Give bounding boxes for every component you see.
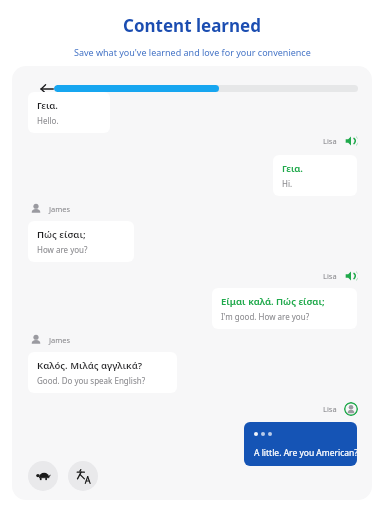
button[interactable]: A little. Are you American? — [244, 422, 357, 466]
staticText: Γεια. — [282, 162, 303, 175]
staticText: Hi. — [282, 178, 293, 189]
staticText: Lisa — [323, 271, 337, 281]
staticText: Πώς είσαι; — [37, 228, 86, 241]
staticText: How are you? — [37, 244, 88, 255]
button[interactable]: Lisa avatar — [344, 402, 358, 416]
staticText: James — [49, 335, 71, 345]
button[interactable]: Play audio — [344, 134, 358, 148]
staticText: A little. Are you American? — [254, 447, 357, 459]
button[interactable]: Είμαι καλά. Πώς είσαι; — [212, 288, 357, 329]
button[interactable]: Πώς είσαι; — [28, 221, 134, 262]
button[interactable]: Γεια. — [273, 155, 357, 196]
staticText: Good. Do you speak English? — [37, 375, 146, 386]
staticText: Είμαι καλά. Πώς είσαι; — [221, 295, 325, 308]
button[interactable]: Play audio — [344, 269, 358, 283]
staticText: Γεια. — [37, 99, 58, 112]
staticText: Hello. — [37, 115, 59, 126]
button[interactable]: Back — [34, 76, 60, 102]
staticText: I'm good. How are you? — [221, 311, 310, 322]
staticText: James — [49, 204, 71, 214]
staticText: Καλός. Μιλάς αγγλικά? — [37, 359, 143, 372]
staticText: Lisa — [323, 404, 337, 414]
button[interactable]: Translate — [68, 461, 98, 491]
staticText: Lisa — [323, 136, 337, 146]
button[interactable]: Καλός. Μιλάς αγγλικά? — [28, 352, 177, 393]
button[interactable]: Γεια. — [28, 92, 110, 133]
button[interactable]: Slow speech — [28, 461, 58, 491]
staticText: Content learned — [123, 14, 261, 37]
staticText: Save what you've learned and love for yo… — [74, 46, 311, 58]
